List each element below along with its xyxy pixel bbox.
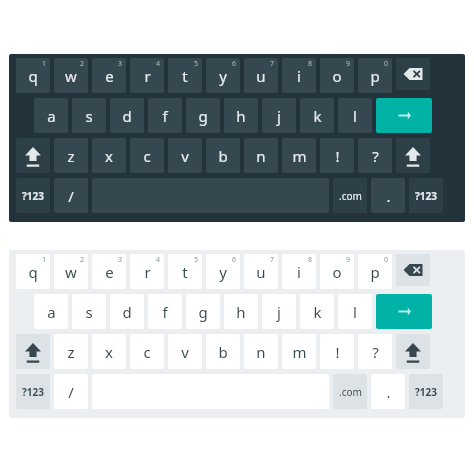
button[interactable]: y: [206, 254, 240, 289]
button[interactable]: l: [338, 98, 372, 133]
button[interactable]: k: [300, 294, 334, 329]
button[interactable]: n: [244, 138, 278, 173]
button[interactable]: d: [110, 98, 144, 133]
button[interactable]: w: [54, 254, 88, 289]
button[interactable]: ?123: [16, 178, 50, 213]
button[interactable]: j: [262, 294, 296, 329]
button[interactable]: r: [130, 58, 164, 93]
button[interactable]: w: [54, 58, 88, 93]
button[interactable]: k: [300, 98, 334, 133]
staticText: q: [28, 262, 38, 282]
button[interactable]: l: [338, 294, 372, 329]
button[interactable]: Shift: [396, 138, 430, 173]
button[interactable]: h: [224, 294, 258, 329]
button[interactable]: a: [34, 294, 68, 329]
button[interactable]: v: [168, 334, 202, 369]
button[interactable]: Shift: [396, 334, 430, 369]
button[interactable]: r: [130, 254, 164, 289]
button[interactable]: t: [168, 254, 202, 289]
button[interactable]: .: [371, 374, 405, 409]
staticText: e: [105, 66, 114, 86]
button[interactable]: i: [282, 254, 316, 289]
staticText: v: [181, 342, 189, 362]
button[interactable]: ?123: [409, 178, 443, 213]
button[interactable]: g: [186, 98, 220, 133]
button[interactable]: a: [34, 98, 68, 133]
button[interactable]: ?123: [16, 374, 50, 409]
button[interactable]: ?: [358, 138, 392, 173]
button[interactable]: e: [92, 254, 126, 289]
button[interactable]: x: [92, 138, 126, 173]
button[interactable]: p: [358, 254, 392, 289]
button[interactable]: m: [282, 138, 316, 173]
button[interactable]: c: [130, 334, 164, 369]
button[interactable]: !: [320, 334, 354, 369]
button[interactable]: h: [224, 98, 258, 133]
staticText: 0: [384, 255, 389, 265]
staticText: .com: [339, 385, 362, 399]
button[interactable]: x: [92, 334, 126, 369]
button[interactable]: n: [244, 334, 278, 369]
button[interactable]: /: [54, 178, 88, 213]
staticText: n: [256, 342, 266, 362]
button[interactable]: j: [262, 98, 296, 133]
button[interactable]: Backspace: [396, 254, 430, 286]
button[interactable]: s: [72, 98, 106, 133]
button[interactable]: q: [16, 254, 50, 289]
button[interactable]: f: [148, 98, 182, 133]
button[interactable]: t: [168, 58, 202, 93]
button[interactable]: .com: [333, 178, 367, 213]
staticText: i: [297, 262, 301, 282]
staticText: r: [144, 66, 151, 86]
button[interactable]: q: [16, 58, 50, 93]
staticText: 0: [384, 59, 389, 69]
button[interactable]: Shift: [16, 138, 50, 173]
staticText: p: [370, 262, 380, 282]
button[interactable]: g: [186, 294, 220, 329]
button[interactable]: u: [244, 254, 278, 289]
button[interactable]: v: [168, 138, 202, 173]
button[interactable]: Enter: [376, 294, 432, 329]
button[interactable]: Backspace: [396, 58, 430, 90]
staticText: z: [67, 146, 75, 166]
staticText: 2: [80, 59, 85, 69]
staticText: s: [85, 106, 93, 126]
button[interactable]: .: [371, 178, 405, 213]
button[interactable]: b: [206, 138, 240, 173]
button[interactable]: c: [130, 138, 164, 173]
button[interactable]: m: [282, 334, 316, 369]
staticText: b: [218, 146, 228, 166]
button[interactable]: b: [206, 334, 240, 369]
staticText: !: [335, 342, 340, 362]
button[interactable]: e: [92, 58, 126, 93]
button[interactable]: o: [320, 58, 354, 93]
staticText: 8: [308, 255, 313, 265]
button[interactable]: s: [72, 294, 106, 329]
staticText: ?: [372, 342, 379, 362]
staticText: e: [105, 262, 114, 282]
button[interactable]: f: [148, 294, 182, 329]
button[interactable]: z: [54, 334, 88, 369]
button[interactable]: .com: [333, 374, 367, 409]
button[interactable]: ?: [358, 334, 392, 369]
staticText: 5: [194, 59, 199, 69]
button[interactable]: /: [54, 374, 88, 409]
button[interactable]: p: [358, 58, 392, 93]
staticText: l: [353, 106, 357, 126]
button[interactable]: u: [244, 58, 278, 93]
staticText: 3: [118, 59, 123, 69]
button[interactable]: z: [54, 138, 88, 173]
button[interactable]: Enter: [376, 98, 432, 133]
button[interactable]: o: [320, 254, 354, 289]
button[interactable]: ?123: [409, 374, 443, 409]
button[interactable]: i: [282, 58, 316, 93]
button[interactable]: !: [320, 138, 354, 173]
button[interactable]: d: [110, 294, 144, 329]
button[interactable]: y: [206, 58, 240, 93]
staticText: 9: [346, 255, 351, 265]
staticText: r: [144, 262, 151, 282]
staticText: s: [85, 302, 93, 322]
button[interactable]: Shift: [16, 334, 50, 369]
